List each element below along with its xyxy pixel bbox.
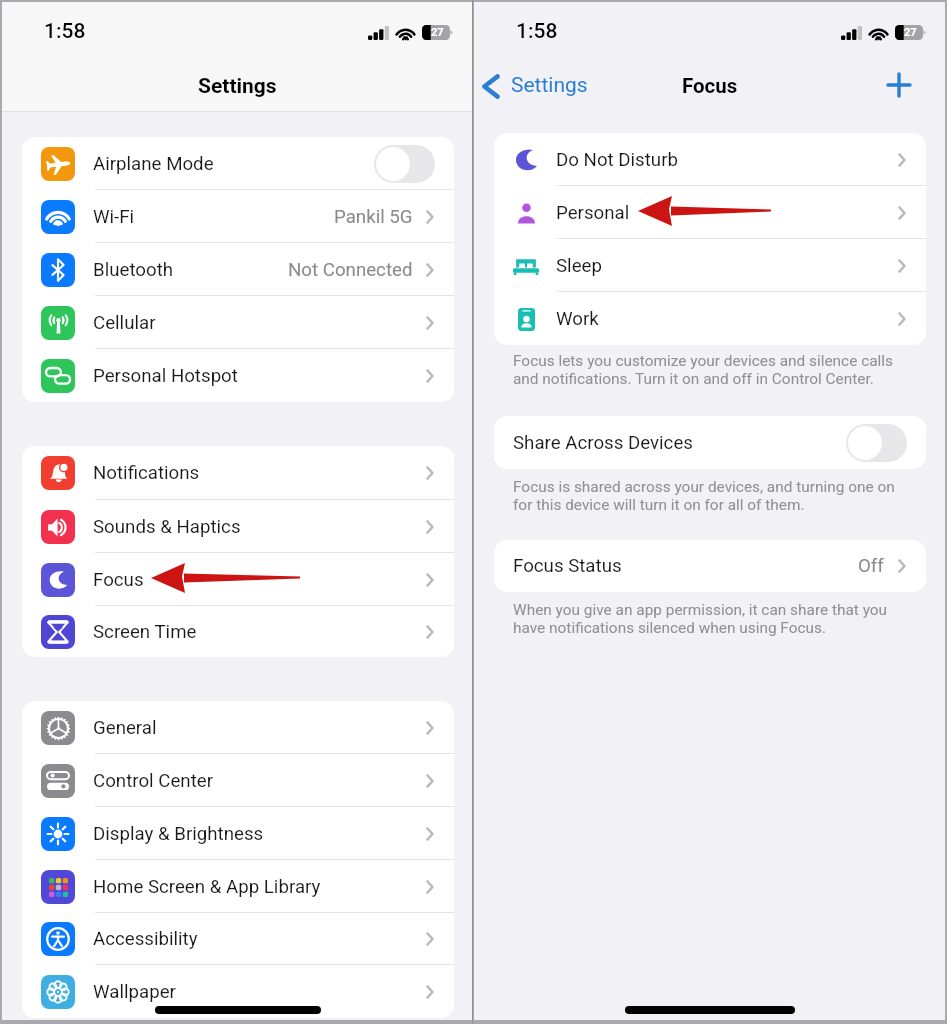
button[interactable]: Screen Time: [22, 606, 454, 657]
button[interactable]: Wallpaper: [22, 965, 454, 1018]
staticText: Cellular: [93, 312, 156, 334]
staticText: Focus: [93, 569, 144, 591]
staticText: Home Screen & App Library: [93, 876, 321, 898]
button[interactable]: [374, 145, 435, 183]
staticText: General: [93, 717, 157, 739]
staticText: Personal Hotspot: [93, 365, 238, 387]
staticText: Bluetooth: [93, 259, 174, 281]
staticText: Pankil 5G: [334, 206, 413, 228]
button[interactable]: Accessibility: [22, 913, 454, 965]
staticText: 1:58: [44, 19, 86, 44]
staticText: Focus lets you customize your devices an…: [513, 352, 943, 388]
staticText: Airplane Mode: [93, 153, 214, 175]
staticText: 1:58: [516, 19, 558, 44]
staticText: Not Connected: [288, 259, 413, 281]
button[interactable]: Personal: [494, 186, 926, 239]
staticText: 27: [431, 26, 444, 39]
button[interactable]: General: [22, 701, 454, 754]
button[interactable]: Sounds & Haptics: [22, 500, 454, 553]
staticText: Control Center: [93, 770, 213, 792]
staticText: Notifications: [93, 462, 200, 484]
staticText: Do Not Disturb: [556, 149, 678, 171]
button[interactable]: Focus Status: [494, 540, 926, 592]
staticText: Focus is shared across your devices, and…: [513, 478, 943, 514]
staticText: Focus Status: [513, 555, 622, 577]
button[interactable]: Focus: [22, 553, 454, 606]
button[interactable]: Sleep: [494, 239, 926, 292]
staticText: Settings: [511, 73, 588, 98]
staticText: Wallpaper: [93, 981, 176, 1003]
staticText: Sounds & Haptics: [93, 516, 241, 538]
staticText: Focus: [682, 74, 738, 98]
staticText: 27: [904, 26, 917, 39]
button[interactable]: Display & Brightness: [22, 807, 454, 860]
staticText: Work: [556, 308, 599, 330]
staticText: When you give an app permission, it can …: [513, 601, 943, 637]
button[interactable]: Home Screen & App Library: [22, 860, 454, 913]
button[interactable]: Cellular: [22, 296, 454, 349]
button[interactable]: [846, 424, 907, 462]
staticText: Accessibility: [93, 928, 198, 950]
button[interactable]: Work: [494, 292, 926, 345]
staticText: Settings: [198, 74, 277, 99]
button[interactable]: Bluetooth: [22, 243, 454, 296]
button[interactable]: Share Across Devices: [494, 416, 926, 469]
button[interactable]: Airplane Mode: [22, 137, 454, 190]
button[interactable]: Add focus: [880, 66, 918, 104]
button[interactable]: Notifications: [22, 446, 454, 500]
button[interactable]: Personal Hotspot: [22, 349, 454, 402]
button[interactable]: Wi-Fi: [22, 190, 454, 243]
staticText: Share Across Devices: [513, 432, 693, 454]
staticText: Sleep: [556, 255, 602, 277]
button[interactable]: Control Center: [22, 754, 454, 807]
staticText: Screen Time: [93, 621, 197, 643]
button[interactable]: Settings: [482, 69, 588, 103]
staticText: Display & Brightness: [93, 823, 264, 845]
staticText: Off: [858, 555, 884, 577]
staticText: Wi-Fi: [93, 206, 135, 228]
staticText: Personal: [556, 202, 630, 224]
button[interactable]: Do Not Disturb: [494, 133, 926, 186]
